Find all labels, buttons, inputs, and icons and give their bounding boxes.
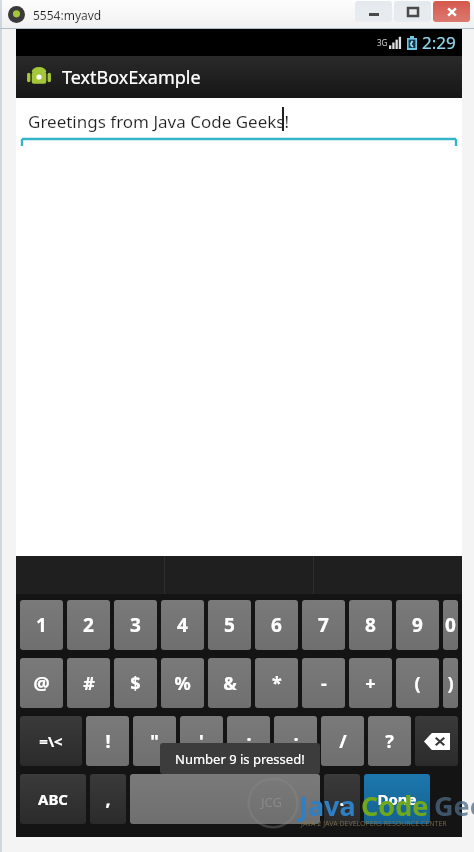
staticText: ! <box>105 729 111 754</box>
button[interactable]: # <box>67 658 110 708</box>
button[interactable]: $ <box>114 658 157 708</box>
staticText: 0 <box>445 612 456 638</box>
button[interactable]: Backspace <box>415 716 458 766</box>
button[interactable]: ? <box>368 716 411 766</box>
staticText: =\< <box>39 731 63 751</box>
button[interactable]: ABC <box>20 774 86 824</box>
button[interactable]: 5 <box>208 600 251 650</box>
other: App icon <box>26 64 52 90</box>
button[interactable]: 2 <box>67 600 110 650</box>
button[interactable]: : <box>227 716 270 766</box>
staticText: 7 <box>318 612 329 638</box>
button[interactable]: 1 <box>20 600 63 650</box>
button[interactable]: ; <box>274 716 317 766</box>
staticText: ( <box>414 671 421 696</box>
staticText: 5554:myavd <box>33 7 102 23</box>
staticText: 4 <box>177 612 188 638</box>
staticText: 3G <box>377 37 388 48</box>
staticText: ? <box>385 729 394 754</box>
staticText: . <box>339 787 345 812</box>
button[interactable]: , <box>90 774 126 824</box>
staticText: * <box>272 671 282 696</box>
button[interactable]: - <box>302 658 345 708</box>
button[interactable] <box>433 1 470 22</box>
staticText: 1 <box>36 612 47 638</box>
staticText: 9 <box>412 612 423 638</box>
staticText: @ <box>33 671 50 696</box>
button[interactable]: Space <box>130 774 320 824</box>
staticText: Greetings from Java Code Geeks! <box>28 110 290 133</box>
staticText: % <box>174 671 191 696</box>
staticText: 6 <box>271 612 282 638</box>
button[interactable]: App icon <box>16 56 462 98</box>
staticText: - <box>321 671 327 696</box>
staticText: ; <box>293 729 299 754</box>
staticText: ) <box>447 671 454 696</box>
button[interactable]: * <box>255 658 298 708</box>
button[interactable]: Greetings from Java Code Geeks! <box>20 104 458 138</box>
staticText: Number 9 is pressed! <box>175 750 305 768</box>
staticText: " <box>150 729 159 754</box>
button[interactable] <box>355 1 392 22</box>
button[interactable]: 6 <box>255 600 298 650</box>
button[interactable]: =\< <box>20 716 82 766</box>
button[interactable]: 4 <box>161 600 204 650</box>
staticText: 3 <box>130 612 141 638</box>
button[interactable]: " <box>133 716 176 766</box>
staticText: 2 <box>83 612 94 638</box>
button[interactable]: 8 <box>349 600 392 650</box>
button[interactable]: ) <box>443 658 458 708</box>
button[interactable]: & <box>208 658 251 708</box>
staticText: 5 <box>224 612 235 638</box>
staticText: JCG <box>261 793 282 811</box>
button[interactable]: @ <box>20 658 63 708</box>
button[interactable]: ( <box>396 658 439 708</box>
staticText: TextBoxExample <box>62 65 201 90</box>
staticText: # <box>83 671 95 696</box>
button[interactable]: 7 <box>302 600 345 650</box>
staticText: ABC <box>38 789 68 809</box>
button[interactable]: ! <box>86 716 129 766</box>
button[interactable]: / <box>321 716 364 766</box>
button[interactable]: ' <box>180 716 223 766</box>
staticText: 8 <box>365 612 376 638</box>
staticText: & <box>223 671 237 696</box>
button[interactable]: 0 <box>443 600 458 650</box>
staticText: Java <box>299 787 356 824</box>
button[interactable]: Done <box>364 774 430 824</box>
button[interactable]: + <box>349 658 392 708</box>
staticText: ' <box>199 729 204 754</box>
staticText: JAVA 2 JAVA DEVELOPERS RESOURCE CENTER <box>301 819 447 829</box>
staticText: : <box>246 729 252 754</box>
staticText: , <box>105 787 111 812</box>
button[interactable] <box>394 1 431 22</box>
staticText: $ <box>130 671 141 696</box>
staticText: Done <box>377 789 417 809</box>
button[interactable]: % <box>161 658 204 708</box>
staticText: Geeks <box>434 787 474 824</box>
button[interactable]: 9 <box>396 600 439 650</box>
staticText: Code <box>361 787 429 824</box>
button[interactable]: . <box>324 774 360 824</box>
button[interactable]: 3 <box>114 600 157 650</box>
staticText: + <box>365 671 376 696</box>
staticText: / <box>339 729 347 754</box>
staticText: 2:29 <box>422 31 456 54</box>
